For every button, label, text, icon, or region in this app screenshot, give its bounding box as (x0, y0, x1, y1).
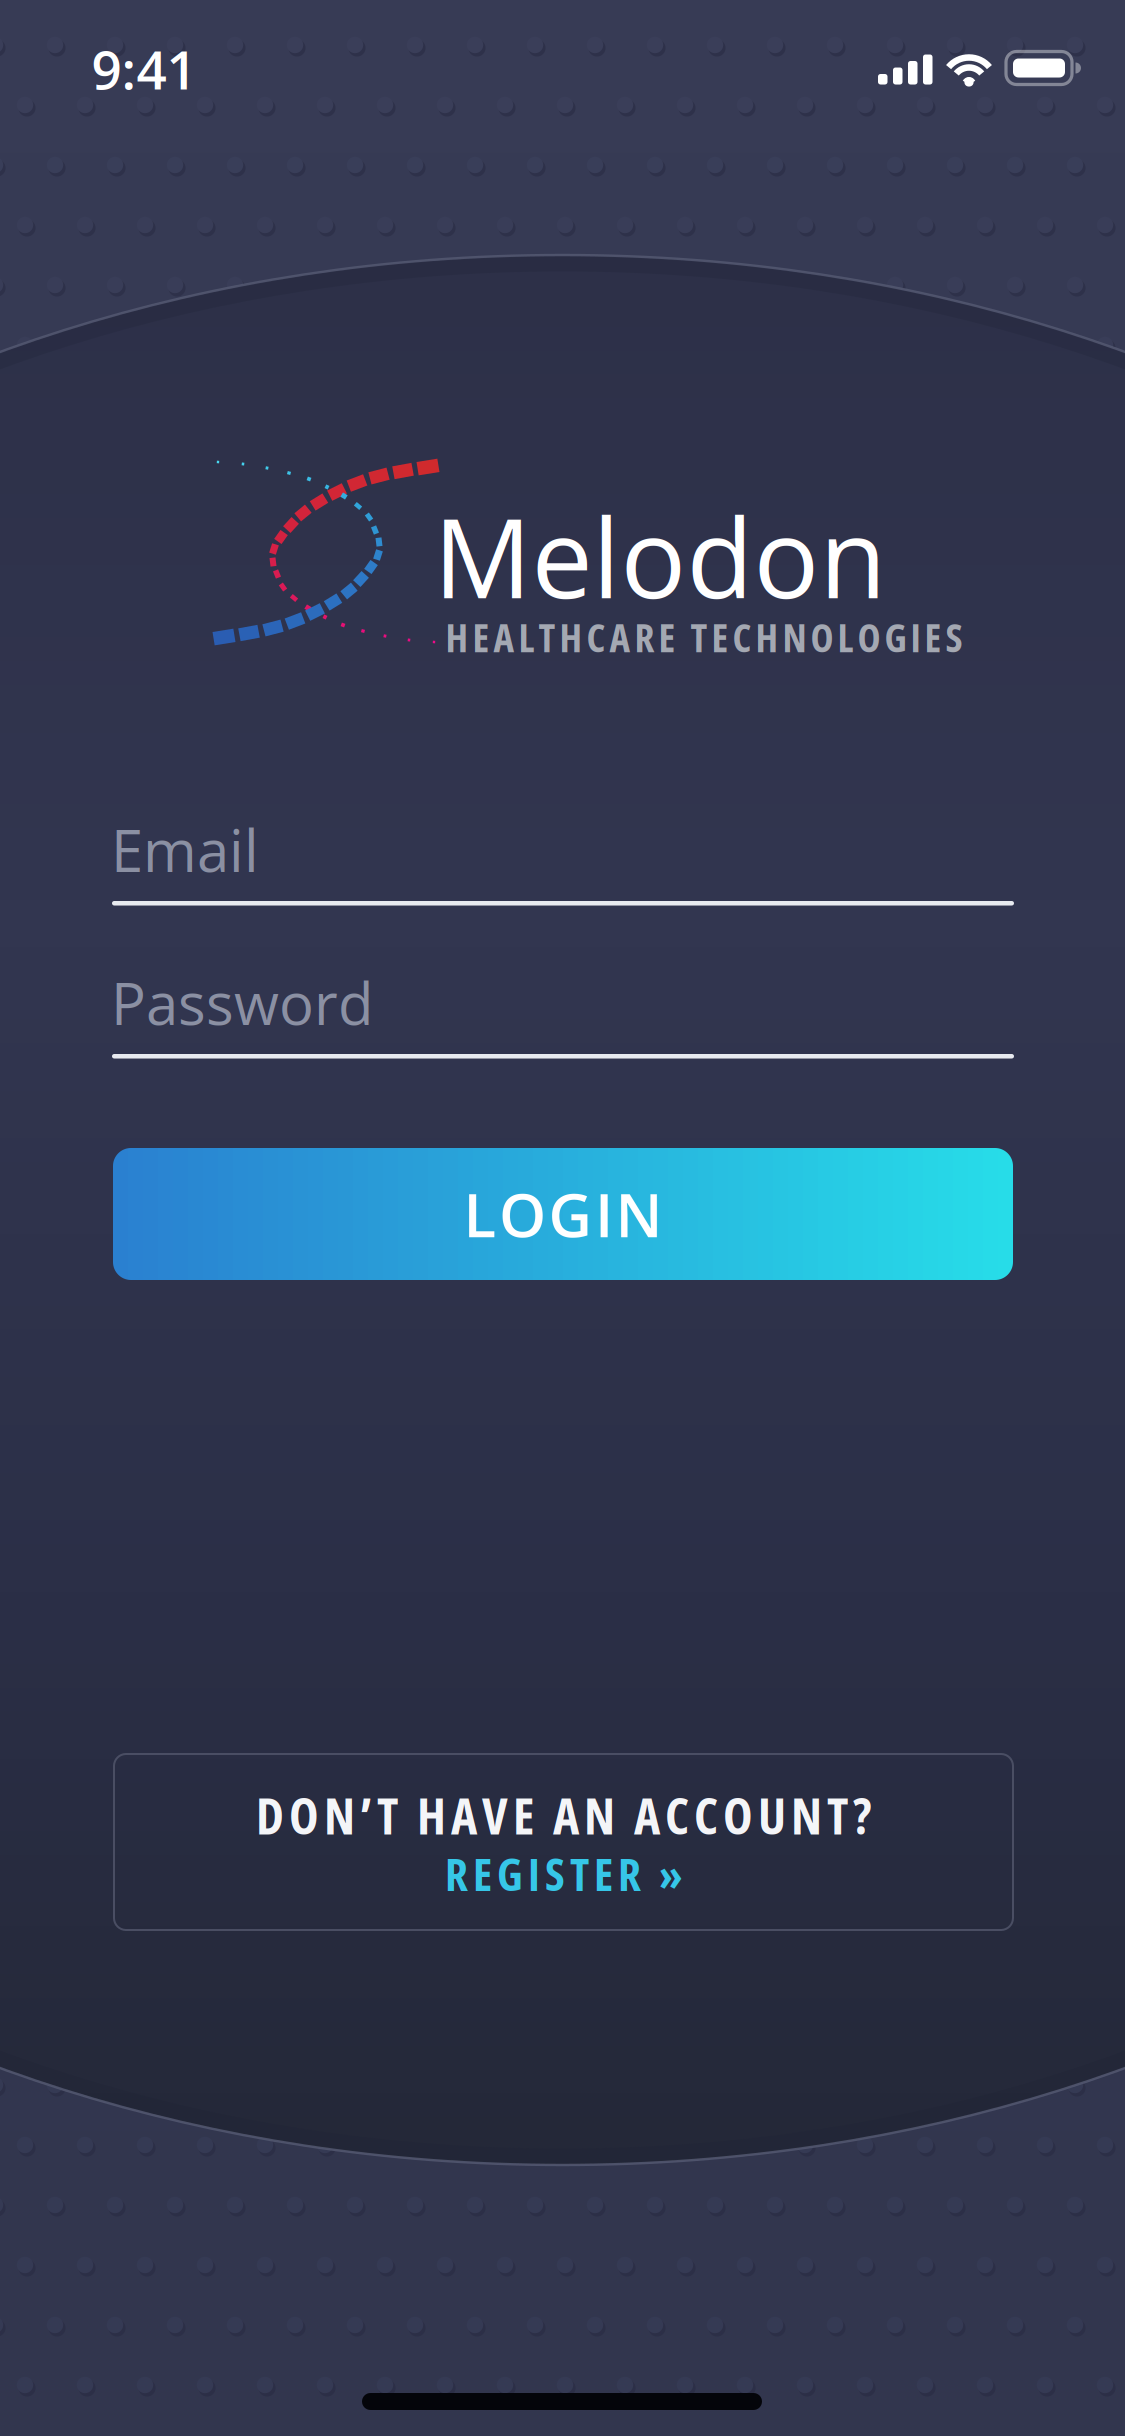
staticText: R E G I S T E R » (445, 1843, 682, 1904)
button[interactable]: LOGIN (113, 1148, 1013, 1280)
staticText: H E A L T H C A R E T E C H N O L O G I … (445, 610, 962, 663)
button[interactable]: D O N ’ T H A V E A N A C C O U N T ? (114, 1754, 1013, 1930)
staticText: 9:41 (91, 33, 196, 105)
button[interactable]: Email (112, 810, 1014, 909)
staticText: D O N ’ T H A V E A N A C C O U N T ? (256, 1781, 871, 1849)
staticText: Password (111, 963, 373, 1042)
staticText: LOGIN (463, 1173, 662, 1255)
button[interactable]: Password (112, 963, 1014, 1062)
staticText: Melodon (433, 482, 886, 630)
staticText: Email (111, 810, 259, 889)
